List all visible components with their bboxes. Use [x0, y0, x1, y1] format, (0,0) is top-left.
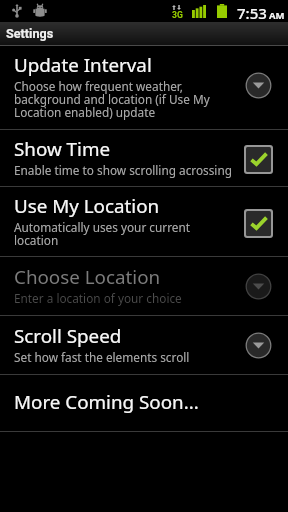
staticText: 7:53	[237, 3, 267, 22]
button[interactable]: Toggle setting	[234, 137, 282, 181]
button[interactable]: Update Interval	[0, 46, 288, 129]
button[interactable]: More Coming Soon...	[0, 375, 288, 431]
staticText: Choose Location	[14, 268, 161, 289]
staticText: Update Interval	[14, 56, 152, 77]
staticText: AM	[269, 11, 285, 21]
button[interactable]: Open options	[234, 264, 282, 308]
staticText: Automatically uses your current location	[14, 221, 234, 247]
staticText: More Coming Soon...	[14, 393, 199, 414]
button[interactable]: Open options	[234, 63, 282, 107]
staticText: Show Time	[14, 140, 111, 161]
button[interactable]: Use My Location	[0, 187, 288, 256]
button[interactable]: Toggle setting	[234, 201, 282, 245]
staticText: Set how fast the elements scroll	[14, 351, 190, 364]
staticText: Enable time to show scrolling acrossing	[14, 164, 232, 177]
button[interactable]: Scroll Speed	[0, 316, 288, 374]
staticText: Scroll Speed	[14, 327, 122, 348]
staticText: Use My Location	[14, 197, 160, 218]
button[interactable]: Show Time	[0, 130, 288, 186]
button[interactable]: Open options	[234, 323, 282, 367]
button[interactable]: Choose Location	[0, 257, 288, 315]
staticText: 3G	[172, 10, 183, 20]
staticText: Choose how frequent weather, background …	[14, 80, 234, 119]
staticText: Settings	[6, 27, 54, 41]
staticText: Enter a location of your choice	[14, 292, 182, 305]
